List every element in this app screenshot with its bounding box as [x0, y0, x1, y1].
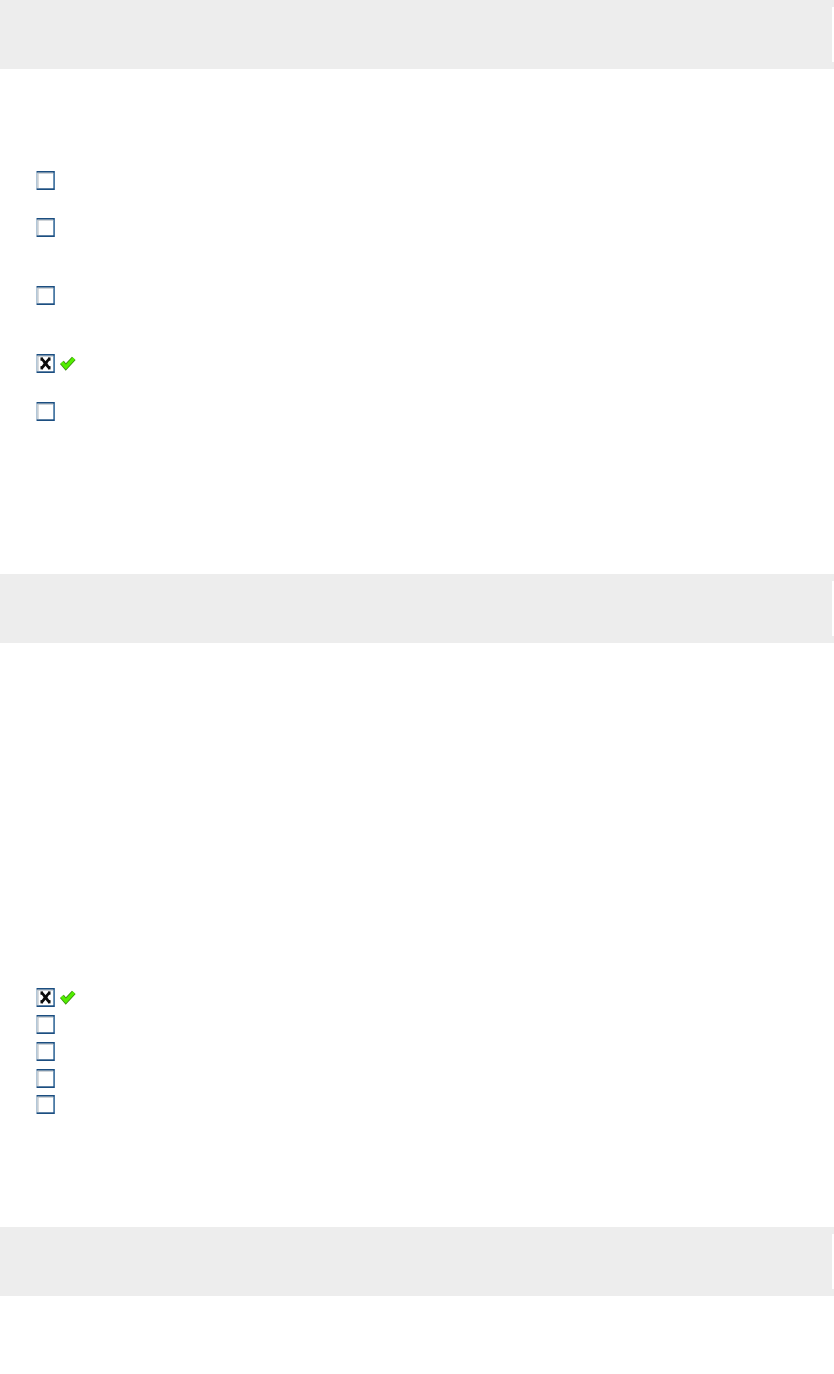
button[interactable]: Checkbox — [36, 402, 55, 421]
button[interactable]: Checkbox — [36, 171, 55, 190]
button[interactable]: Checkbox — [36, 1095, 55, 1114]
button[interactable]: Checked checkbox — [36, 988, 55, 1007]
button[interactable]: Checkbox — [36, 1042, 55, 1061]
button[interactable]: Verified — [60, 357, 76, 371]
button[interactable]: Checked checkbox — [36, 354, 55, 373]
button[interactable]: Verified — [60, 991, 76, 1005]
button[interactable]: Checkbox — [36, 1015, 55, 1034]
button[interactable]: Checkbox — [36, 286, 55, 305]
button[interactable]: Checkbox — [36, 218, 55, 237]
button[interactable]: Checkbox — [36, 1069, 55, 1088]
